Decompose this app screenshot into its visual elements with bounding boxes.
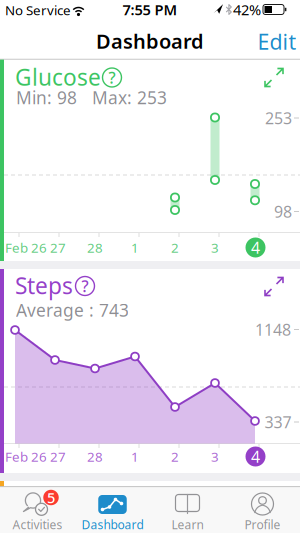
staticText: Average : 743 xyxy=(16,298,129,321)
staticText: 4 xyxy=(251,446,260,467)
staticText: 4 xyxy=(251,237,260,258)
button[interactable]: About Glucose xyxy=(102,67,122,87)
staticText: 1 xyxy=(131,239,139,256)
staticText: Min: 98 Max: 253 xyxy=(16,86,167,109)
staticText: Steps xyxy=(15,270,73,300)
staticText: Edit xyxy=(257,27,296,56)
button[interactable]: Expand Glucose chart xyxy=(261,64,287,90)
staticText: 28 xyxy=(87,448,103,465)
staticText: ? xyxy=(81,275,88,297)
staticText: 1148 xyxy=(255,319,291,340)
staticText: 27 xyxy=(50,239,66,256)
staticText: 3 xyxy=(211,448,219,465)
staticText: 2 xyxy=(171,448,179,465)
staticText: 1 xyxy=(131,448,139,465)
staticText: Feb 26 xyxy=(5,239,47,256)
button[interactable]: About Steps xyxy=(75,276,95,296)
button[interactable]: Activities xyxy=(0,487,75,533)
staticText: 7:55 PM xyxy=(122,0,177,19)
staticText: Dashboard xyxy=(96,28,204,54)
button[interactable]: Expand Steps chart xyxy=(261,273,287,299)
staticText: Learn xyxy=(171,516,203,532)
staticText: No Service xyxy=(5,1,71,19)
staticText: Activities xyxy=(12,516,62,532)
button[interactable]: Profile xyxy=(225,487,300,533)
button[interactable]: Dashboard xyxy=(75,487,150,533)
staticText: Profile xyxy=(244,516,280,532)
staticText: 27 xyxy=(50,448,66,465)
staticText: 98 xyxy=(274,201,292,222)
staticText: ? xyxy=(108,67,115,88)
staticText: 5 xyxy=(47,488,55,507)
staticText: 42% xyxy=(233,0,261,19)
button[interactable]: Learn xyxy=(150,487,225,533)
staticText: 2 xyxy=(171,239,179,256)
button[interactable]: Edit xyxy=(257,27,296,56)
staticText: Glucose xyxy=(15,62,101,92)
staticText: 3 xyxy=(211,239,219,256)
staticText: 253 xyxy=(265,107,292,129)
staticText: Feb 26 xyxy=(5,448,47,465)
staticText: Dashboard xyxy=(81,516,143,532)
staticText: 28 xyxy=(87,239,103,256)
staticText: 337 xyxy=(264,411,291,433)
